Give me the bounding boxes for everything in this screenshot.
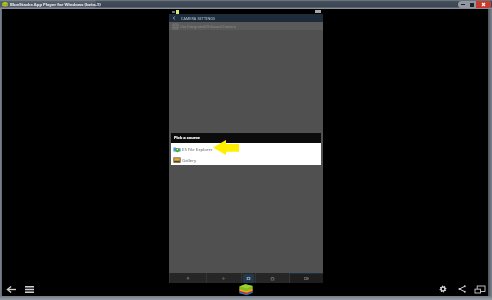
button[interactable]: Menu <box>22 282 36 296</box>
button[interactable]: nav <box>206 273 241 283</box>
button[interactable]: Use Integrated/Onboard Camera <box>169 22 323 30</box>
staticText: Pick a source <box>174 135 200 140</box>
button[interactable]: ES File Explorer <box>171 143 321 154</box>
button[interactable]: nav <box>289 273 323 283</box>
button[interactable]: nav <box>255 273 289 283</box>
button[interactable]: nav <box>169 273 206 283</box>
staticText: BlueStacks App Player for Windows (beta-… <box>10 2 101 8</box>
button[interactable]: nav <box>241 273 255 283</box>
staticText: ES File Explorer <box>182 146 213 152</box>
button[interactable]: Maximize <box>467 1 476 8</box>
button[interactable]: Settings <box>436 282 450 296</box>
button[interactable]: Windowed mode <box>473 282 487 296</box>
button[interactable]: Minimize <box>458 1 467 8</box>
staticText: Use Integrated/Onboard Camera <box>180 24 236 29</box>
button[interactable]: Back <box>4 282 18 296</box>
staticText: Gallery <box>182 157 197 163</box>
button[interactable]: Gallery <box>171 154 321 165</box>
button[interactable]: Share <box>455 282 469 296</box>
button[interactable]: Close <box>476 1 491 8</box>
staticText: CAMERA SETTINGS <box>181 16 216 21</box>
button[interactable]: Back <box>169 14 178 22</box>
